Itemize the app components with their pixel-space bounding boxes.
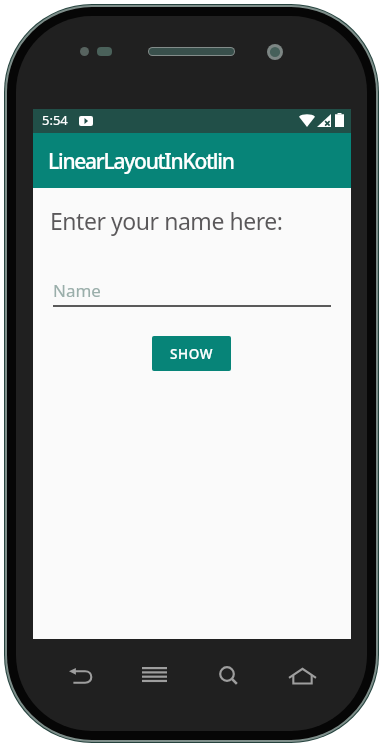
button[interactable]: Back [44, 655, 116, 697]
staticText: Name [53, 279, 101, 302]
staticText: 5:54 [42, 111, 68, 129]
button[interactable]: Search [192, 653, 264, 695]
button[interactable]: Menu [118, 653, 190, 695]
staticText: LinearLayoutInKotlin [48, 147, 234, 176]
button[interactable]: Home [266, 655, 338, 697]
button[interactable]: SHOW [152, 336, 231, 371]
button[interactable]: Name input field [53, 273, 331, 307]
staticText: Enter your name here: [50, 205, 283, 236]
staticText: SHOW [170, 345, 214, 363]
